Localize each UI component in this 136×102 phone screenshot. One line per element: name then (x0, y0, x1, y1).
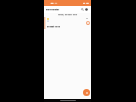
staticText: 30 sept. 2019 (47, 25, 60, 28)
button[interactable]: Add new counter (83, 89, 90, 96)
staticText: Days Counter (46, 8, 59, 11)
staticText: 30 sept. 2019 (47, 25, 60, 28)
button[interactable]: 30 sept. 2019 (44, 17, 91, 29)
staticText: Today, 30 sept. 2019 (58, 13, 78, 16)
staticText: Today, 30 sept. 2019 (58, 14, 78, 17)
staticText: Days Counter (46, 9, 59, 12)
button[interactable]: Search (80, 7, 85, 12)
staticText: 30 sept. 2019 (47, 26, 60, 29)
staticText: Days Counter (46, 8, 59, 11)
button[interactable]: More options (84, 7, 89, 12)
button[interactable]: Days Counter (46, 6, 59, 13)
staticText: Today, 30 sept. 2019 (58, 13, 78, 16)
